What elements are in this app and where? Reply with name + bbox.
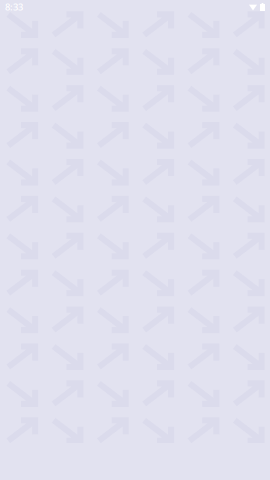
staticText: 8:33 <box>5 1 23 13</box>
